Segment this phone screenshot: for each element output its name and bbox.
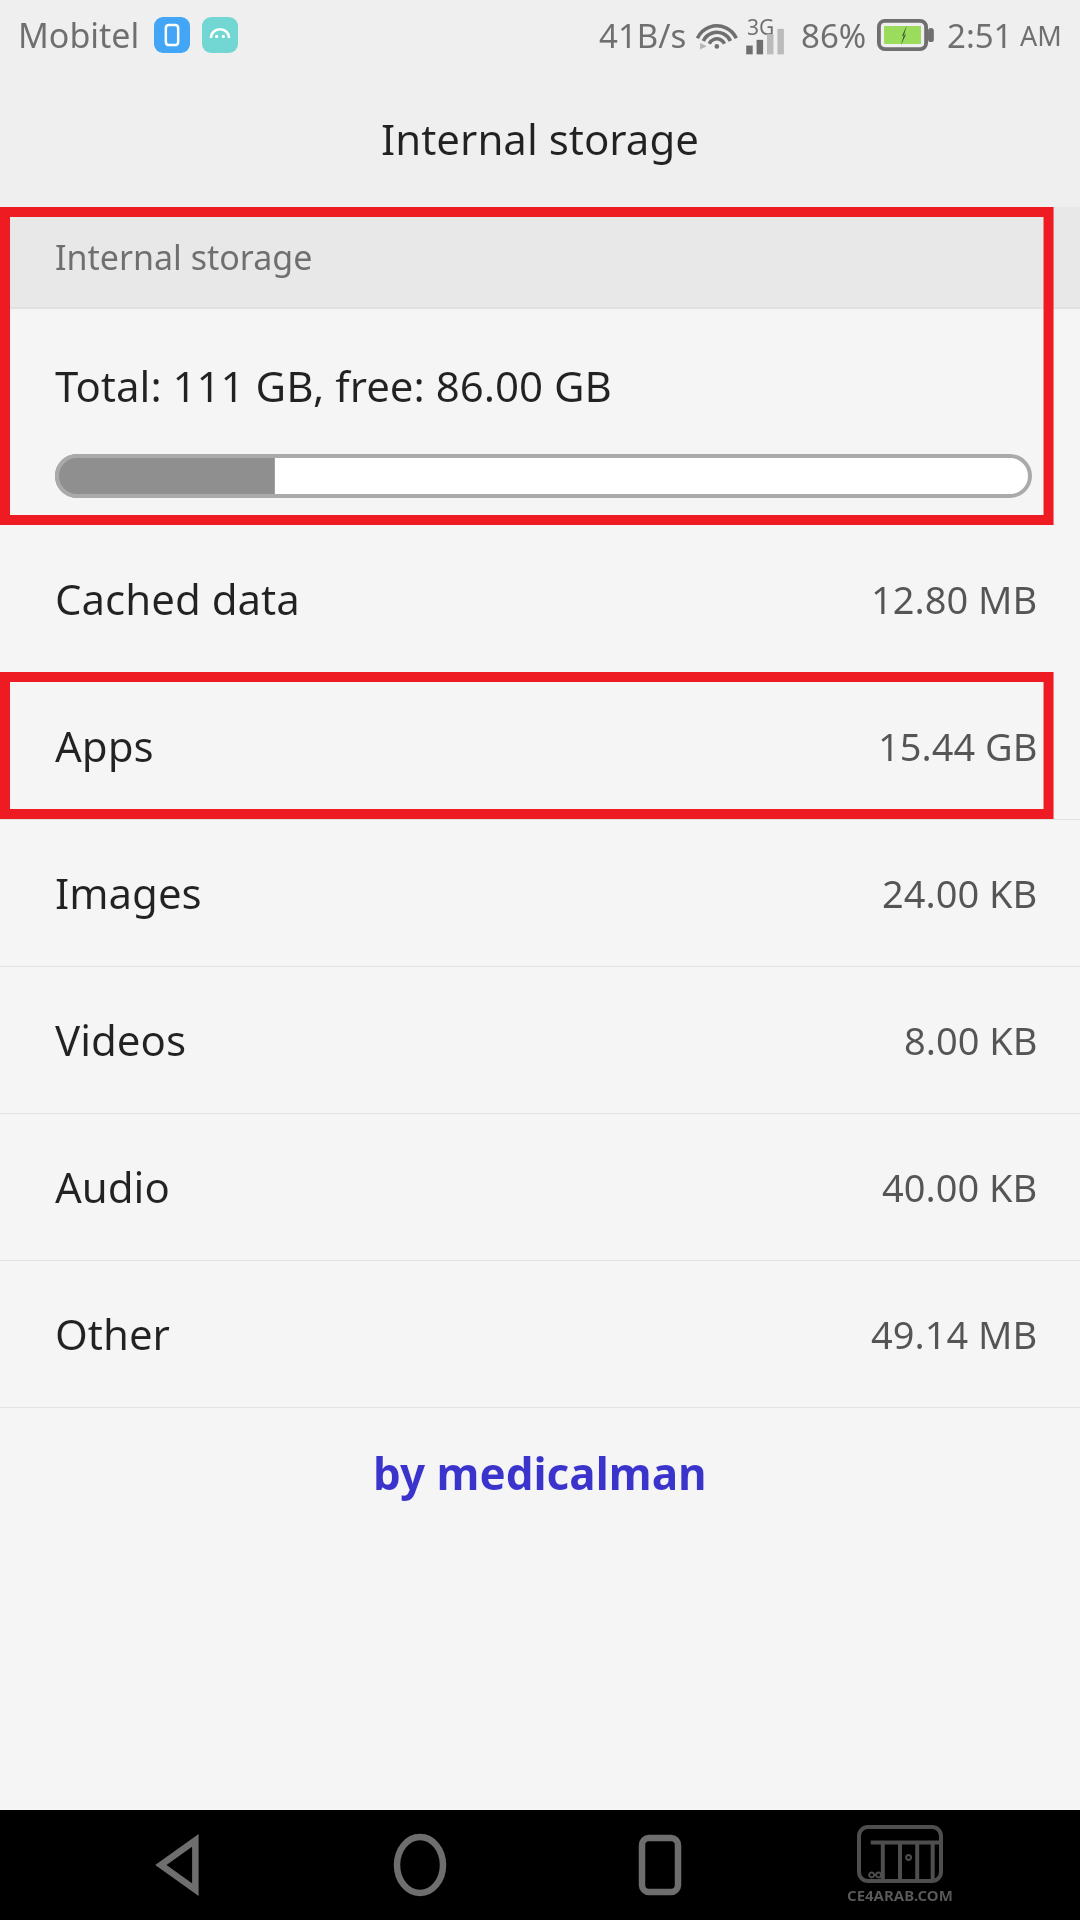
button[interactable]: Home	[360, 1810, 480, 1920]
staticText: 15.44 GB	[878, 720, 1038, 772]
staticText: 41B/s	[599, 13, 687, 58]
staticText: Internal storage	[381, 110, 699, 167]
button[interactable]: Apps	[0, 672, 1080, 819]
staticText: 8.00 KB	[904, 1014, 1038, 1066]
staticText: Apps	[55, 717, 154, 774]
staticText: Other	[55, 1305, 170, 1362]
staticText: Audio	[55, 1158, 170, 1215]
staticText: 86%	[801, 13, 867, 58]
button[interactable]: Back	[120, 1810, 240, 1920]
button[interactable]: Audio	[0, 1113, 1080, 1260]
button[interactable]: Recent apps	[600, 1810, 720, 1920]
button[interactable]: Other	[0, 1260, 1080, 1407]
staticText: by medicalman	[373, 1443, 707, 1503]
button[interactable]: Videos	[0, 966, 1080, 1113]
staticText: Cached data	[55, 570, 300, 627]
staticText: Videos	[55, 1011, 187, 1068]
staticText: 12.80 MB	[871, 573, 1038, 625]
staticText: 24.00 KB	[882, 867, 1038, 919]
button[interactable]: Cached data	[0, 525, 1080, 672]
staticText: CE4ARAB.COM	[847, 1885, 953, 1905]
staticText: 2:51	[947, 13, 1013, 58]
staticText: 3G	[747, 13, 775, 42]
staticText: 40.00 KB	[882, 1161, 1038, 1213]
staticText: 49.14 MB	[871, 1308, 1038, 1360]
staticText: Images	[55, 864, 202, 921]
staticText: Internal storage	[55, 234, 313, 280]
staticText: Total: 111 GB, free: 86.00 GB	[55, 357, 612, 414]
staticText: Mobitel	[18, 12, 140, 58]
button[interactable]: Images	[0, 819, 1080, 966]
staticText: AM	[1020, 17, 1062, 54]
